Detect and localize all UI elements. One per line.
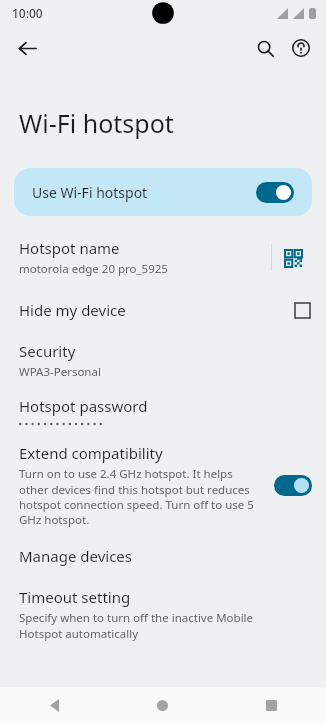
staticText: Hotspot password [19,396,148,416]
button[interactable]: Back [0,687,108,724]
staticText: 10:00 [12,5,43,21]
button[interactable]: Security [0,341,326,380]
button[interactable]: Help [284,31,318,65]
staticText: Use Wi-Fi hotspot [32,183,256,202]
staticText: Hide my device [19,300,295,320]
button[interactable]: Manage devices [0,541,326,571]
staticText: motorola edge 20 pro_5925 [19,261,168,277]
button[interactable]: Recent apps [217,687,326,724]
button[interactable]: Timeout setting [0,587,326,641]
staticText: Hotspot name [19,238,120,258]
staticText: Specify when to turn off the inactive Mo… [19,610,296,641]
button[interactable]: Use Wi-Fi hotspot [14,168,312,216]
button[interactable]: Search [248,31,282,65]
staticText: Wi-Fi hotspot [19,106,174,140]
staticText: Security [19,341,76,361]
staticText: Extend compatibility [19,443,163,463]
staticText: Timeout setting [19,587,131,607]
button[interactable]: Back [10,31,44,65]
button[interactable]: Share hotspot QR code [272,241,314,275]
button[interactable]: Home [108,687,217,724]
staticText: Turn on to use 2.4 GHz hotspot. It helps… [19,466,264,527]
staticText: Manage devices [19,546,133,566]
button[interactable]: Hide my device [0,293,326,327]
button[interactable]: Hotspot password [0,396,326,427]
button[interactable]: Hotspot name [0,238,326,277]
staticText: WPA3-Personal [19,364,101,380]
button[interactable]: Extend compatibility [0,443,326,527]
